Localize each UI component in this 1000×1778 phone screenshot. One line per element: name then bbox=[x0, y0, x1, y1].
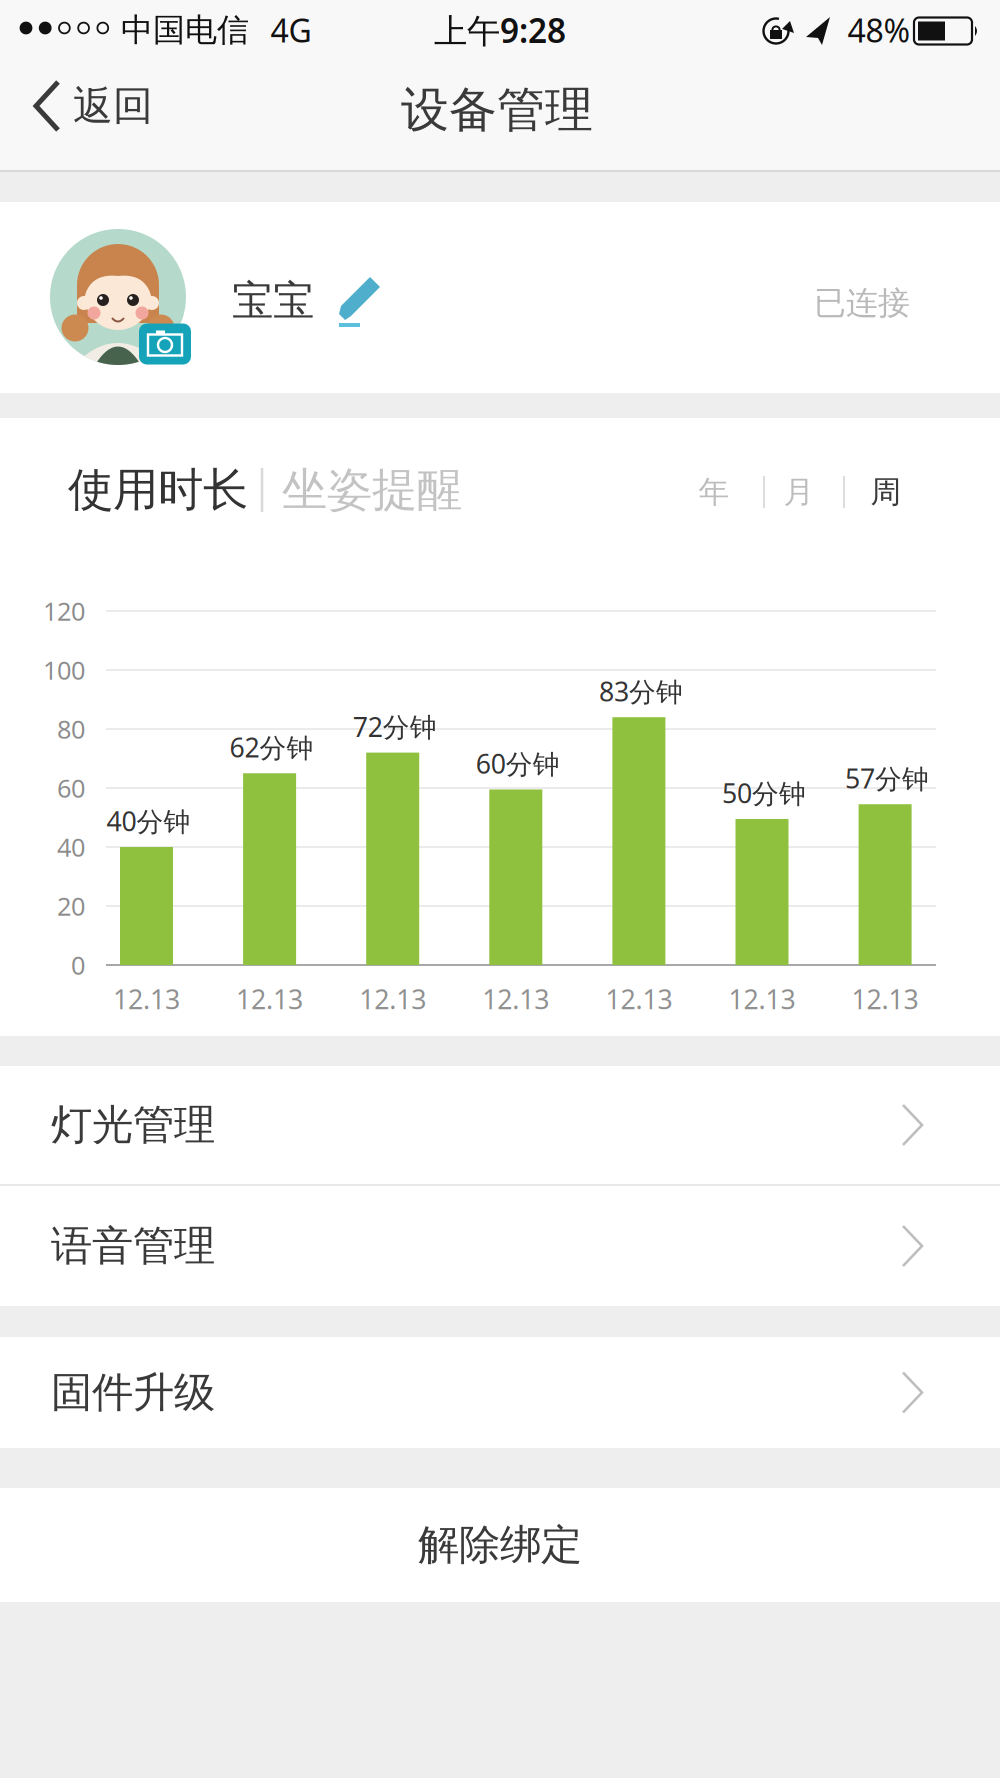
staticText: 40 bbox=[57, 830, 85, 864]
staticText: 12.13 bbox=[852, 981, 919, 1017]
button[interactable]: 返回 bbox=[0, 54, 180, 166]
staticText: 宝宝 bbox=[232, 276, 314, 326]
staticText: 80 bbox=[57, 712, 85, 746]
staticText: 60 bbox=[57, 771, 85, 805]
staticText: 设备管理 bbox=[401, 80, 593, 139]
button[interactable]: 解除绑定 bbox=[0, 1488, 1000, 1602]
staticText: 已连接 bbox=[814, 283, 910, 323]
staticText: 周 bbox=[870, 473, 901, 511]
button[interactable]: 固件升级 bbox=[0, 1337, 1000, 1448]
staticText: 72分钟 bbox=[353, 709, 437, 744]
staticText: 固件升级 bbox=[51, 1367, 215, 1418]
staticText: 返回 bbox=[73, 81, 153, 130]
button[interactable]: 使用时长 bbox=[18, 450, 298, 530]
staticText: 57分钟 bbox=[845, 760, 929, 796]
staticText: 48% bbox=[847, 9, 910, 51]
button[interactable]: 灯光管理 bbox=[0, 1066, 1000, 1184]
staticText: 20 bbox=[57, 889, 85, 923]
staticText: 60分钟 bbox=[476, 746, 560, 781]
staticText: 解除绑定 bbox=[418, 1520, 582, 1570]
button[interactable] bbox=[139, 323, 191, 364]
button[interactable]: 语音管理 bbox=[0, 1186, 1000, 1306]
staticText: 12.13 bbox=[236, 981, 303, 1017]
staticText: 83分钟 bbox=[599, 673, 683, 709]
staticText: 12.13 bbox=[113, 981, 180, 1017]
staticText: 12.13 bbox=[359, 981, 426, 1017]
staticText: 12.13 bbox=[482, 981, 549, 1017]
button[interactable]: 年 bbox=[684, 457, 744, 527]
staticText: 4G bbox=[270, 9, 311, 51]
button[interactable]: 周 bbox=[856, 457, 916, 527]
staticText: 120 bbox=[43, 594, 85, 628]
staticText: 中国电信 bbox=[121, 10, 249, 50]
staticText: 50分钟 bbox=[722, 775, 806, 811]
staticText: 12.13 bbox=[728, 981, 795, 1017]
staticText: 月 bbox=[783, 473, 814, 511]
staticText: 100 bbox=[43, 653, 85, 687]
staticText: 灯光管理 bbox=[51, 1100, 215, 1150]
staticText: 语音管理 bbox=[51, 1221, 215, 1271]
button[interactable]: 坐姿提醒 bbox=[232, 450, 512, 530]
staticText: 坐姿提醒 bbox=[282, 462, 462, 518]
button[interactable] bbox=[339, 277, 381, 327]
staticText: 62分钟 bbox=[230, 729, 314, 765]
staticText: 上午9:28 bbox=[434, 8, 566, 52]
staticText: 0 bbox=[71, 948, 85, 982]
staticText: 使用时长 bbox=[68, 462, 248, 518]
staticText: 12.13 bbox=[605, 981, 672, 1017]
staticText: 年 bbox=[698, 473, 729, 511]
button[interactable]: 月 bbox=[769, 457, 829, 527]
staticText: 40分钟 bbox=[106, 803, 190, 839]
